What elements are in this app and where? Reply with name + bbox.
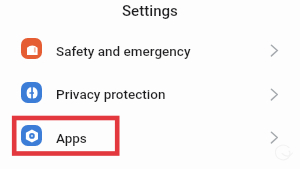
other: Open Privacy protection — [270, 88, 281, 102]
staticText: Settings — [122, 2, 178, 20]
button[interactable]: Apps — [0, 114, 300, 157]
other: Open Safety and emergency — [270, 44, 281, 58]
other: Open Apps — [270, 131, 281, 145]
staticText: Privacy protection — [56, 86, 166, 102]
staticText: Safety and emergency — [56, 43, 191, 59]
staticText: Apps — [56, 130, 87, 146]
button[interactable]: Safety and emergency — [0, 27, 300, 70]
button[interactable]: Privacy protection — [0, 71, 300, 114]
